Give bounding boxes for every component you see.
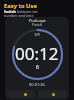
button[interactable]: Previous set (7, 90, 35, 98)
staticText: 6 (36, 64, 39, 71)
staticText: 00:12 (15, 42, 59, 65)
staticText: 1/1 (34, 32, 40, 37)
staticText: Push-ups (29, 18, 46, 23)
staticText: Switch between set number and time (4, 9, 38, 18)
staticText: Easy to Use (4, 2, 37, 10)
button[interactable]: Next set (38, 90, 67, 98)
staticText: Finish (32, 22, 43, 27)
staticText: 00:01:26 (29, 82, 45, 87)
